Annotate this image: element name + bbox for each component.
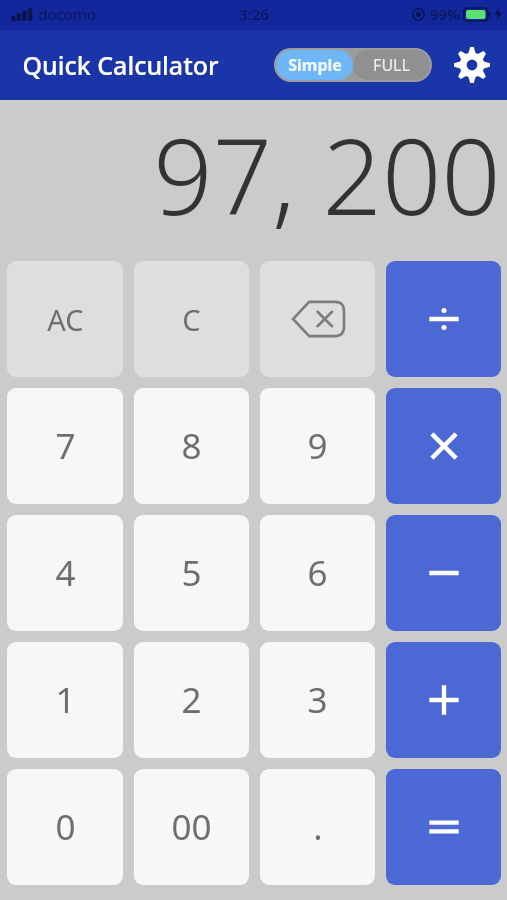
button[interactable]: 3 <box>260 642 375 758</box>
staticText: 0 <box>55 803 76 851</box>
button[interactable]: Equals <box>386 769 501 885</box>
button[interactable]: Settings <box>445 38 499 92</box>
staticText: Quick Calculator <box>22 48 219 82</box>
button[interactable]: 8 <box>134 388 249 504</box>
button[interactable]: 2 <box>134 642 249 758</box>
button[interactable]: 6 <box>260 515 375 631</box>
staticText: 3 <box>307 676 328 724</box>
button[interactable]: Simple <box>276 50 353 80</box>
staticText: 1 <box>55 676 76 724</box>
button[interactable]: 1 <box>7 642 123 758</box>
staticText: 9 <box>307 422 328 470</box>
staticText: 5 <box>181 549 202 597</box>
button[interactable]: 0 <box>7 769 123 885</box>
staticText: 2 <box>181 676 202 724</box>
staticText: C <box>182 300 201 339</box>
staticText: docomo <box>38 4 96 24</box>
button[interactable]: C <box>134 261 249 377</box>
staticText: 00 <box>171 803 212 851</box>
staticText: 7 <box>55 422 76 470</box>
button[interactable]: Add <box>386 642 501 758</box>
button[interactable]: . <box>260 769 375 885</box>
button[interactable]: Subtract <box>386 515 501 631</box>
staticText: 97, 200 <box>153 104 501 246</box>
button[interactable]: Divide <box>386 261 501 377</box>
staticText: . <box>313 803 323 851</box>
button[interactable]: 4 <box>7 515 123 631</box>
staticText: Simple <box>288 54 342 76</box>
button[interactable]: Backspace <box>260 261 375 377</box>
button[interactable]: 9 <box>260 388 375 504</box>
button[interactable]: 00 <box>134 769 249 885</box>
staticText: 6 <box>307 549 328 597</box>
staticText: AC <box>47 300 84 339</box>
staticText: 8 <box>181 422 202 470</box>
button[interactable]: AC <box>7 261 123 377</box>
button[interactable]: FULL <box>353 50 430 80</box>
button[interactable]: 5 <box>134 515 249 631</box>
staticText: FULL <box>373 54 410 76</box>
staticText: 3:26 <box>239 4 269 24</box>
button[interactable]: 7 <box>7 388 123 504</box>
staticText: 99% <box>430 4 460 24</box>
staticText: 4 <box>55 549 76 597</box>
button[interactable]: Multiply <box>386 388 501 504</box>
